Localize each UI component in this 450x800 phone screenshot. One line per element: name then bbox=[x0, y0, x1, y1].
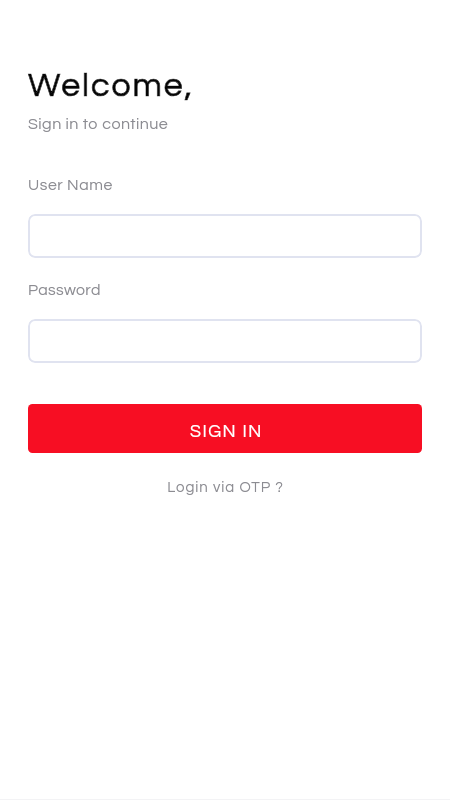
staticText: Welcome, bbox=[28, 68, 195, 103]
button[interactable]: User name input field bbox=[28, 214, 422, 258]
staticText: User Name bbox=[28, 177, 113, 193]
button[interactable]: SIGN IN bbox=[28, 404, 422, 453]
button[interactable]: Password input field bbox=[28, 319, 422, 363]
staticText: SIGN IN bbox=[190, 422, 263, 440]
staticText: Welcome, bbox=[28, 68, 195, 103]
staticText: Login via OTP ? bbox=[167, 480, 284, 495]
button[interactable]: Login via OTP ? bbox=[153, 471, 298, 504]
staticText: Password bbox=[28, 282, 101, 298]
staticText: Sign in to continue bbox=[28, 116, 169, 133]
